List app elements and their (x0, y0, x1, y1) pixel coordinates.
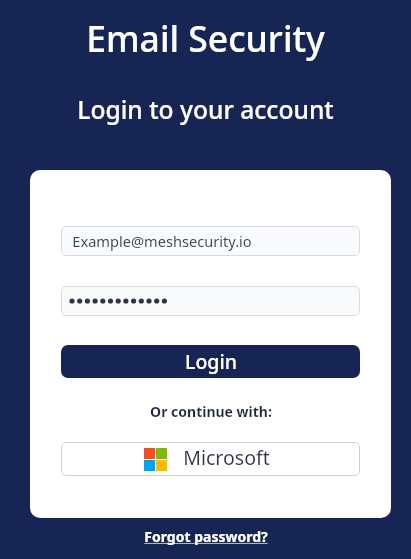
button[interactable]: Login (61, 345, 360, 378)
staticText: Microsoft (183, 444, 270, 471)
button[interactable]: Example@meshsecurity.io (61, 226, 360, 256)
button[interactable]: Forgot password? (144, 527, 268, 546)
button[interactable] (61, 286, 360, 316)
staticText: Login to your account (77, 93, 334, 127)
button[interactable]: Microsoft (61, 442, 360, 476)
staticText: Login (185, 348, 237, 375)
staticText: Or continue with: (150, 402, 272, 421)
staticText: Example@meshsecurity.io (72, 231, 252, 251)
staticText: Email Security (86, 14, 325, 62)
